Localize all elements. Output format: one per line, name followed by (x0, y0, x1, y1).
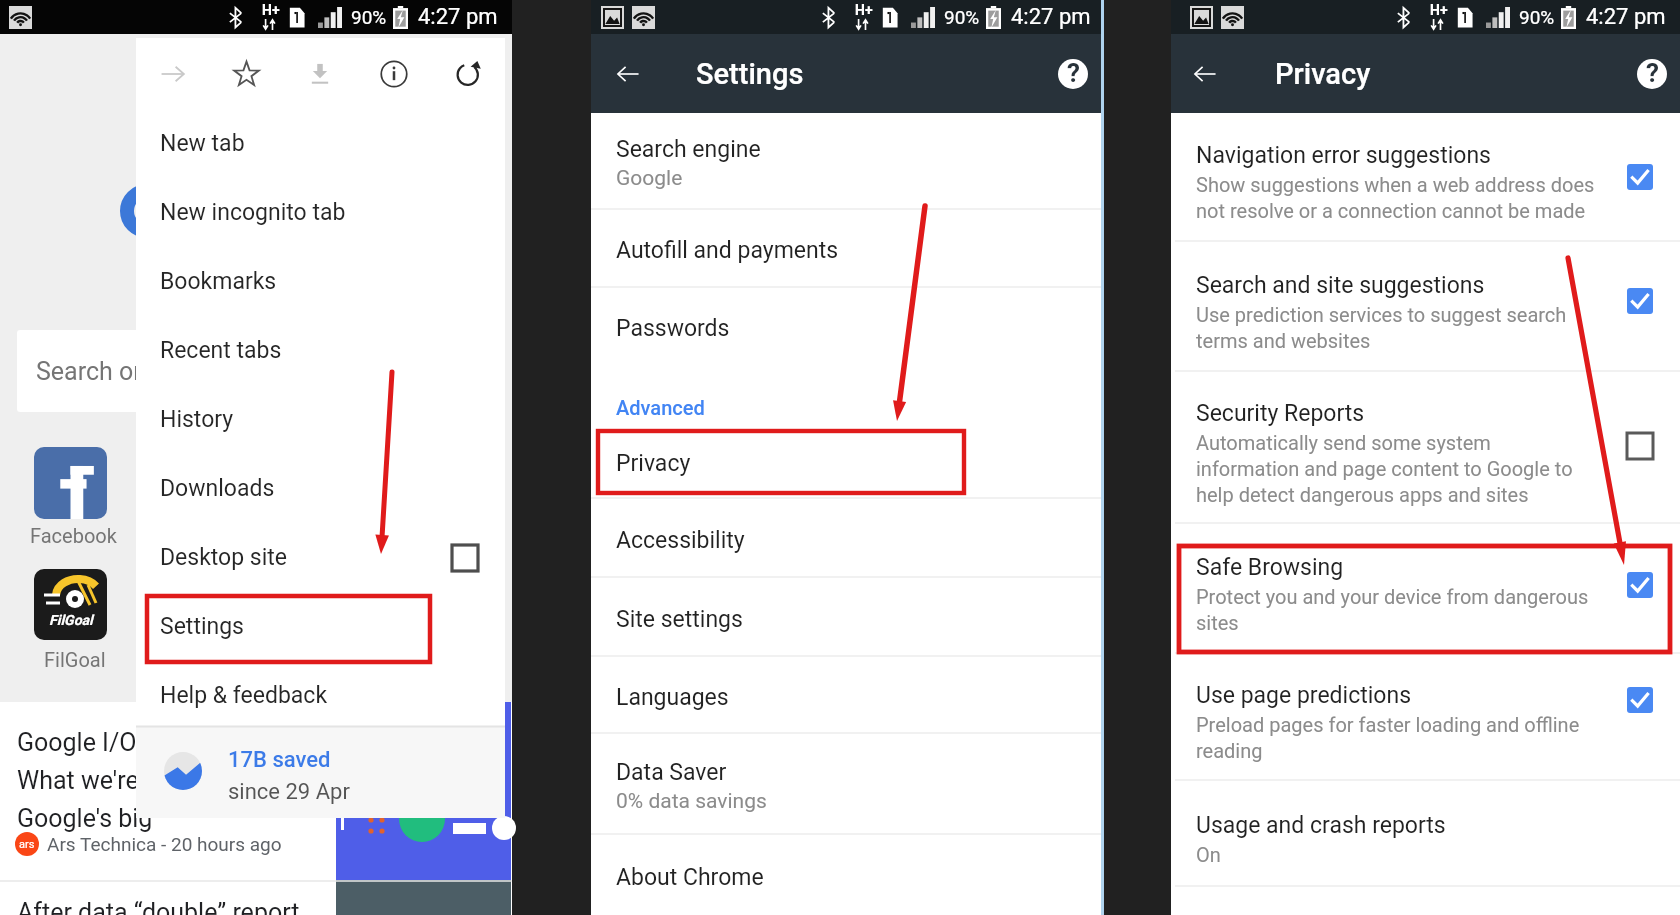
staticText: ars (19, 838, 35, 851)
button[interactable]: Usage and crash reports (1171, 781, 1680, 886)
button[interactable]: Search engine (591, 113, 1101, 209)
staticText: New incognito tab (160, 199, 346, 226)
staticText: terms and websites (1196, 329, 1371, 352)
staticText: Ars Technica - 20 hours ago (47, 833, 282, 855)
staticText: Accessibility (616, 527, 745, 554)
staticText: H+ (1430, 2, 1448, 18)
button[interactable]: Page info (357, 38, 431, 109)
staticText: Security Reports (1196, 400, 1365, 427)
staticText: Privacy (1275, 57, 1371, 91)
button[interactable]: 17B saved (136, 726, 505, 818)
button[interactable]: Downloads (136, 454, 505, 523)
button[interactable]: Forward (136, 38, 209, 109)
staticText: 17B saved (228, 747, 331, 773)
staticText: help detect dangerous apps and sites (1196, 483, 1529, 506)
staticText: Preload pages for faster loading and off… (1196, 713, 1580, 736)
staticText: Google I/O 2 (17, 728, 157, 757)
staticText: Safe Browsing (1196, 554, 1344, 581)
staticText: Settings (160, 613, 244, 640)
staticText: since 29 Apr (228, 779, 350, 805)
button[interactable]: Autofill and payments (591, 210, 1101, 287)
staticText: sites (1196, 611, 1239, 634)
staticText: Recent tabs (160, 337, 282, 364)
staticText: reading (1196, 739, 1263, 762)
button[interactable]: Settings (136, 592, 505, 661)
button[interactable]: Languages (591, 657, 1101, 733)
staticText: On (1196, 843, 1221, 866)
staticText: 4:27 pm (1586, 4, 1666, 30)
staticText: Facebook (30, 524, 117, 547)
button[interactable]: History (136, 385, 505, 454)
button[interactable]: Back (606, 52, 650, 96)
button[interactable]: Accessibility (591, 499, 1101, 577)
button[interactable]: About Chrome (591, 835, 1101, 915)
button[interactable]: Security Reports (1171, 372, 1680, 523)
staticText: 90% (351, 6, 387, 28)
button[interactable]: Search or (17, 330, 267, 412)
button[interactable]: Use page predictions (1171, 654, 1680, 780)
staticText: Google (616, 166, 683, 191)
staticText: About Chrome (616, 864, 764, 891)
staticText: H+ (855, 2, 873, 18)
button[interactable]: Privacy (591, 431, 1101, 492)
button[interactable]: Facebook shortcut (34, 447, 107, 519)
button[interactable]: Reload (431, 38, 505, 109)
staticText: 0% data savings (616, 789, 767, 814)
button[interactable]: Safe Browsing (1171, 524, 1680, 653)
button[interactable]: Download (283, 38, 357, 109)
button[interactable]: Help (1058, 59, 1088, 89)
staticText: H+ (262, 2, 280, 18)
staticText: Passwords (616, 315, 730, 342)
staticText: What we're e (17, 766, 159, 795)
staticText: Show suggestions when a web address does (1196, 173, 1595, 196)
button[interactable]: Recent tabs (136, 316, 505, 385)
button[interactable]: Bookmark (209, 38, 283, 109)
button[interactable]: Bookmarks (136, 247, 505, 316)
staticText: Protect you and your device from dangero… (1196, 585, 1589, 608)
staticText: New tab (160, 130, 245, 157)
staticText: Use page predictions (1196, 682, 1412, 709)
staticText: After data “double” report (17, 898, 300, 915)
staticText: 4:27 pm (1011, 4, 1091, 30)
staticText: 90% (944, 6, 980, 28)
staticText: Bookmarks (160, 268, 277, 295)
button[interactable]: Navigation error suggestions (1171, 113, 1680, 241)
staticText: Use prediction services to suggest searc… (1196, 303, 1567, 326)
staticText: Automatically send some system (1196, 431, 1491, 454)
staticText: History (160, 406, 234, 433)
staticText: FilGoal (49, 612, 93, 628)
button[interactable]: Site settings (591, 578, 1101, 656)
button[interactable]: FilGoal shortcut (34, 569, 107, 640)
staticText: information and page content to Google t… (1196, 457, 1573, 480)
staticText: Downloads (160, 475, 275, 502)
staticText: Help & feedback (160, 682, 328, 709)
staticText: Autofill and payments (616, 237, 839, 264)
staticText: Settings (696, 57, 804, 91)
staticText: Google's big (17, 804, 153, 833)
button[interactable]: Help & feedback (136, 661, 505, 730)
button[interactable]: New tab (136, 109, 505, 178)
button[interactable]: Data Saver (591, 734, 1101, 834)
staticText: FilGoal (44, 648, 106, 671)
staticText: Languages (616, 684, 729, 711)
staticText: Privacy (616, 450, 691, 477)
staticText: Search engine (616, 136, 761, 163)
button[interactable]: Search and site suggestions (1171, 242, 1680, 371)
staticText: Site settings (616, 606, 743, 633)
button[interactable]: Help (1637, 59, 1667, 89)
button[interactable]: Passwords (591, 288, 1101, 365)
staticText: ? (1646, 59, 1659, 88)
staticText: Desktop site (160, 544, 288, 571)
staticText: Usage and crash reports (1196, 812, 1446, 839)
staticText: 4:27 pm (418, 4, 498, 30)
staticText: Advanced (616, 396, 705, 419)
staticText: Search and site suggestions (1196, 272, 1485, 299)
staticText: Navigation error suggestions (1196, 142, 1491, 169)
button[interactable]: Back (1183, 52, 1227, 96)
staticText: Data Saver (616, 759, 727, 786)
staticText: 90% (1519, 6, 1555, 28)
staticText: ? (1067, 59, 1080, 88)
button[interactable]: Desktop site (136, 523, 505, 592)
button[interactable]: New incognito tab (136, 178, 505, 247)
staticText: not resolve or a connection cannot be ma… (1196, 199, 1586, 222)
